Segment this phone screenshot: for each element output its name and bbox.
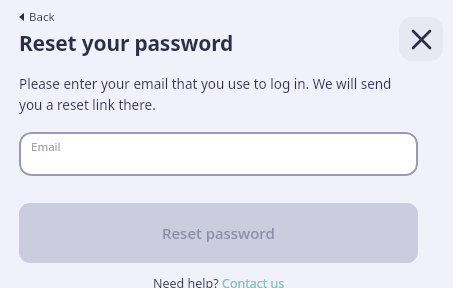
- button[interactable]: Email: [19, 132, 418, 176]
- button[interactable]: Close: [399, 17, 443, 61]
- staticText: Please enter your email that you use to …: [19, 75, 418, 114]
- button[interactable]: Back: [19, 9, 55, 25]
- staticText: Back: [29, 9, 55, 25]
- button[interactable]: Reset password: [19, 203, 418, 263]
- button[interactable]: Contact us: [222, 275, 285, 288]
- staticText: Email: [31, 139, 61, 155]
- staticText: Reset your password: [19, 29, 234, 58]
- staticText: Reset password: [162, 223, 275, 243]
- staticText: Need help?: [153, 275, 222, 288]
